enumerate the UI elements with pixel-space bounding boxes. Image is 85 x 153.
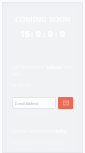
staticText: 0 (60, 28, 65, 40)
staticText: E-mail Address (15, 101, 39, 106)
staticText: COMING SOON (15, 14, 71, 24)
button[interactable]: E-mail Address (12, 97, 56, 109)
button[interactable]: Subscribe (58, 97, 73, 109)
staticText: 0 (36, 28, 41, 40)
staticText: : (55, 29, 58, 39)
staticText: 0 (48, 28, 53, 40)
staticText: 15 (20, 28, 30, 40)
staticText: : (43, 29, 46, 39)
staticText: : (31, 29, 34, 39)
